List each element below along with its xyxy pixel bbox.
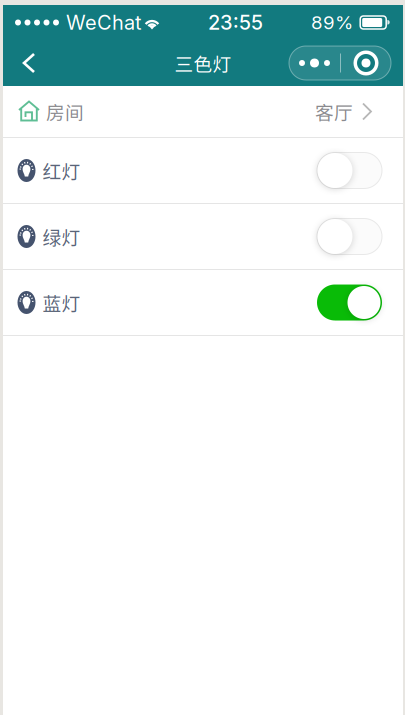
staticText: 蓝灯: [42, 289, 80, 316]
button[interactable]: Back: [12, 43, 46, 83]
button[interactable]: 红灯: [3, 138, 403, 203]
button[interactable]: 绿灯: [3, 204, 403, 269]
staticText: 89%: [311, 11, 353, 34]
staticText: 23:55: [208, 10, 263, 35]
staticText: WeChat: [66, 10, 142, 35]
staticText: 客厅: [315, 98, 353, 125]
staticText: 红灯: [42, 157, 80, 184]
staticText: 房间: [46, 98, 84, 125]
staticText: 绿灯: [42, 223, 80, 250]
button[interactable]: More: [289, 46, 391, 80]
staticText: 三色灯: [174, 49, 231, 76]
button[interactable]: 房间: [3, 86, 403, 137]
button[interactable]: 蓝灯: [3, 270, 403, 335]
